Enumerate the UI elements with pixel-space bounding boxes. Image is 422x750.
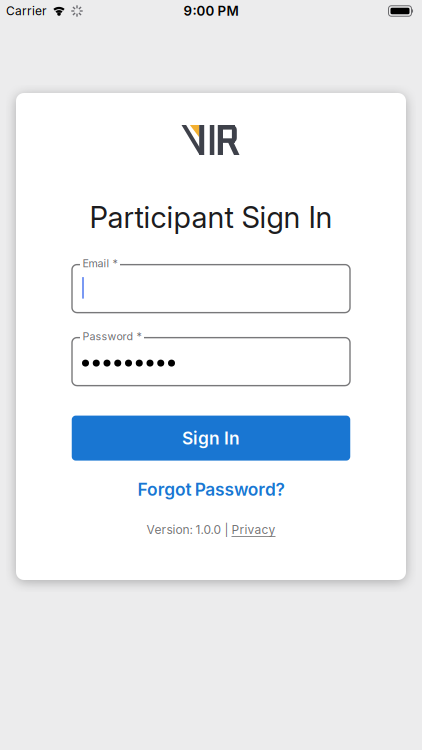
staticText: Email * [82, 257, 117, 270]
button[interactable]: Sign In [72, 416, 350, 461]
staticText: Privacy [231, 523, 275, 537]
button[interactable]: Privacy [231, 523, 275, 537]
staticText: Participant Sign In [89, 200, 332, 235]
staticText: 9:00 PM [183, 3, 238, 19]
button[interactable]: Password [72, 338, 350, 386]
button[interactable]: Email [72, 265, 350, 313]
staticText: Carrier [6, 4, 47, 18]
button[interactable]: Forgot Password? [137, 479, 284, 499]
staticText: Password * [82, 330, 141, 343]
staticText: Version: 1.0.0 | [146, 523, 231, 537]
staticText: Sign In [182, 428, 240, 448]
staticText: Forgot Password? [137, 479, 284, 499]
